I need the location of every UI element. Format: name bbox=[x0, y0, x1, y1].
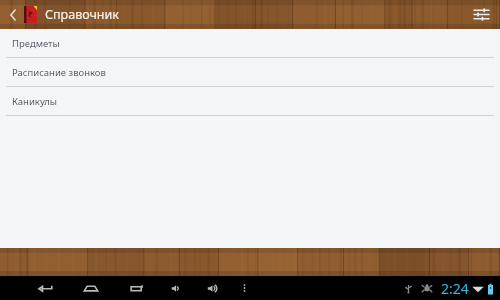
button[interactable]: Back bbox=[28, 276, 62, 300]
button[interactable]: Back bbox=[6, 0, 20, 29]
staticText: 2:24 bbox=[441, 279, 469, 298]
button[interactable]: Home bbox=[74, 276, 108, 300]
staticText: Справочник bbox=[45, 6, 119, 23]
button[interactable]: Volume down bbox=[164, 276, 190, 300]
staticText: Каникулы bbox=[12, 95, 58, 108]
staticText: Предметы bbox=[12, 37, 60, 50]
staticText: Расписание звонков bbox=[12, 66, 106, 79]
button[interactable]: Volume up bbox=[200, 276, 226, 300]
button[interactable]: Settings bbox=[468, 0, 494, 29]
button[interactable]: Recent apps bbox=[120, 276, 154, 300]
button[interactable]: Расписание звонков bbox=[0, 58, 500, 87]
button[interactable]: Каникулы bbox=[0, 87, 500, 116]
button[interactable]: More options bbox=[234, 276, 254, 300]
button[interactable]: Предметы bbox=[0, 29, 500, 58]
